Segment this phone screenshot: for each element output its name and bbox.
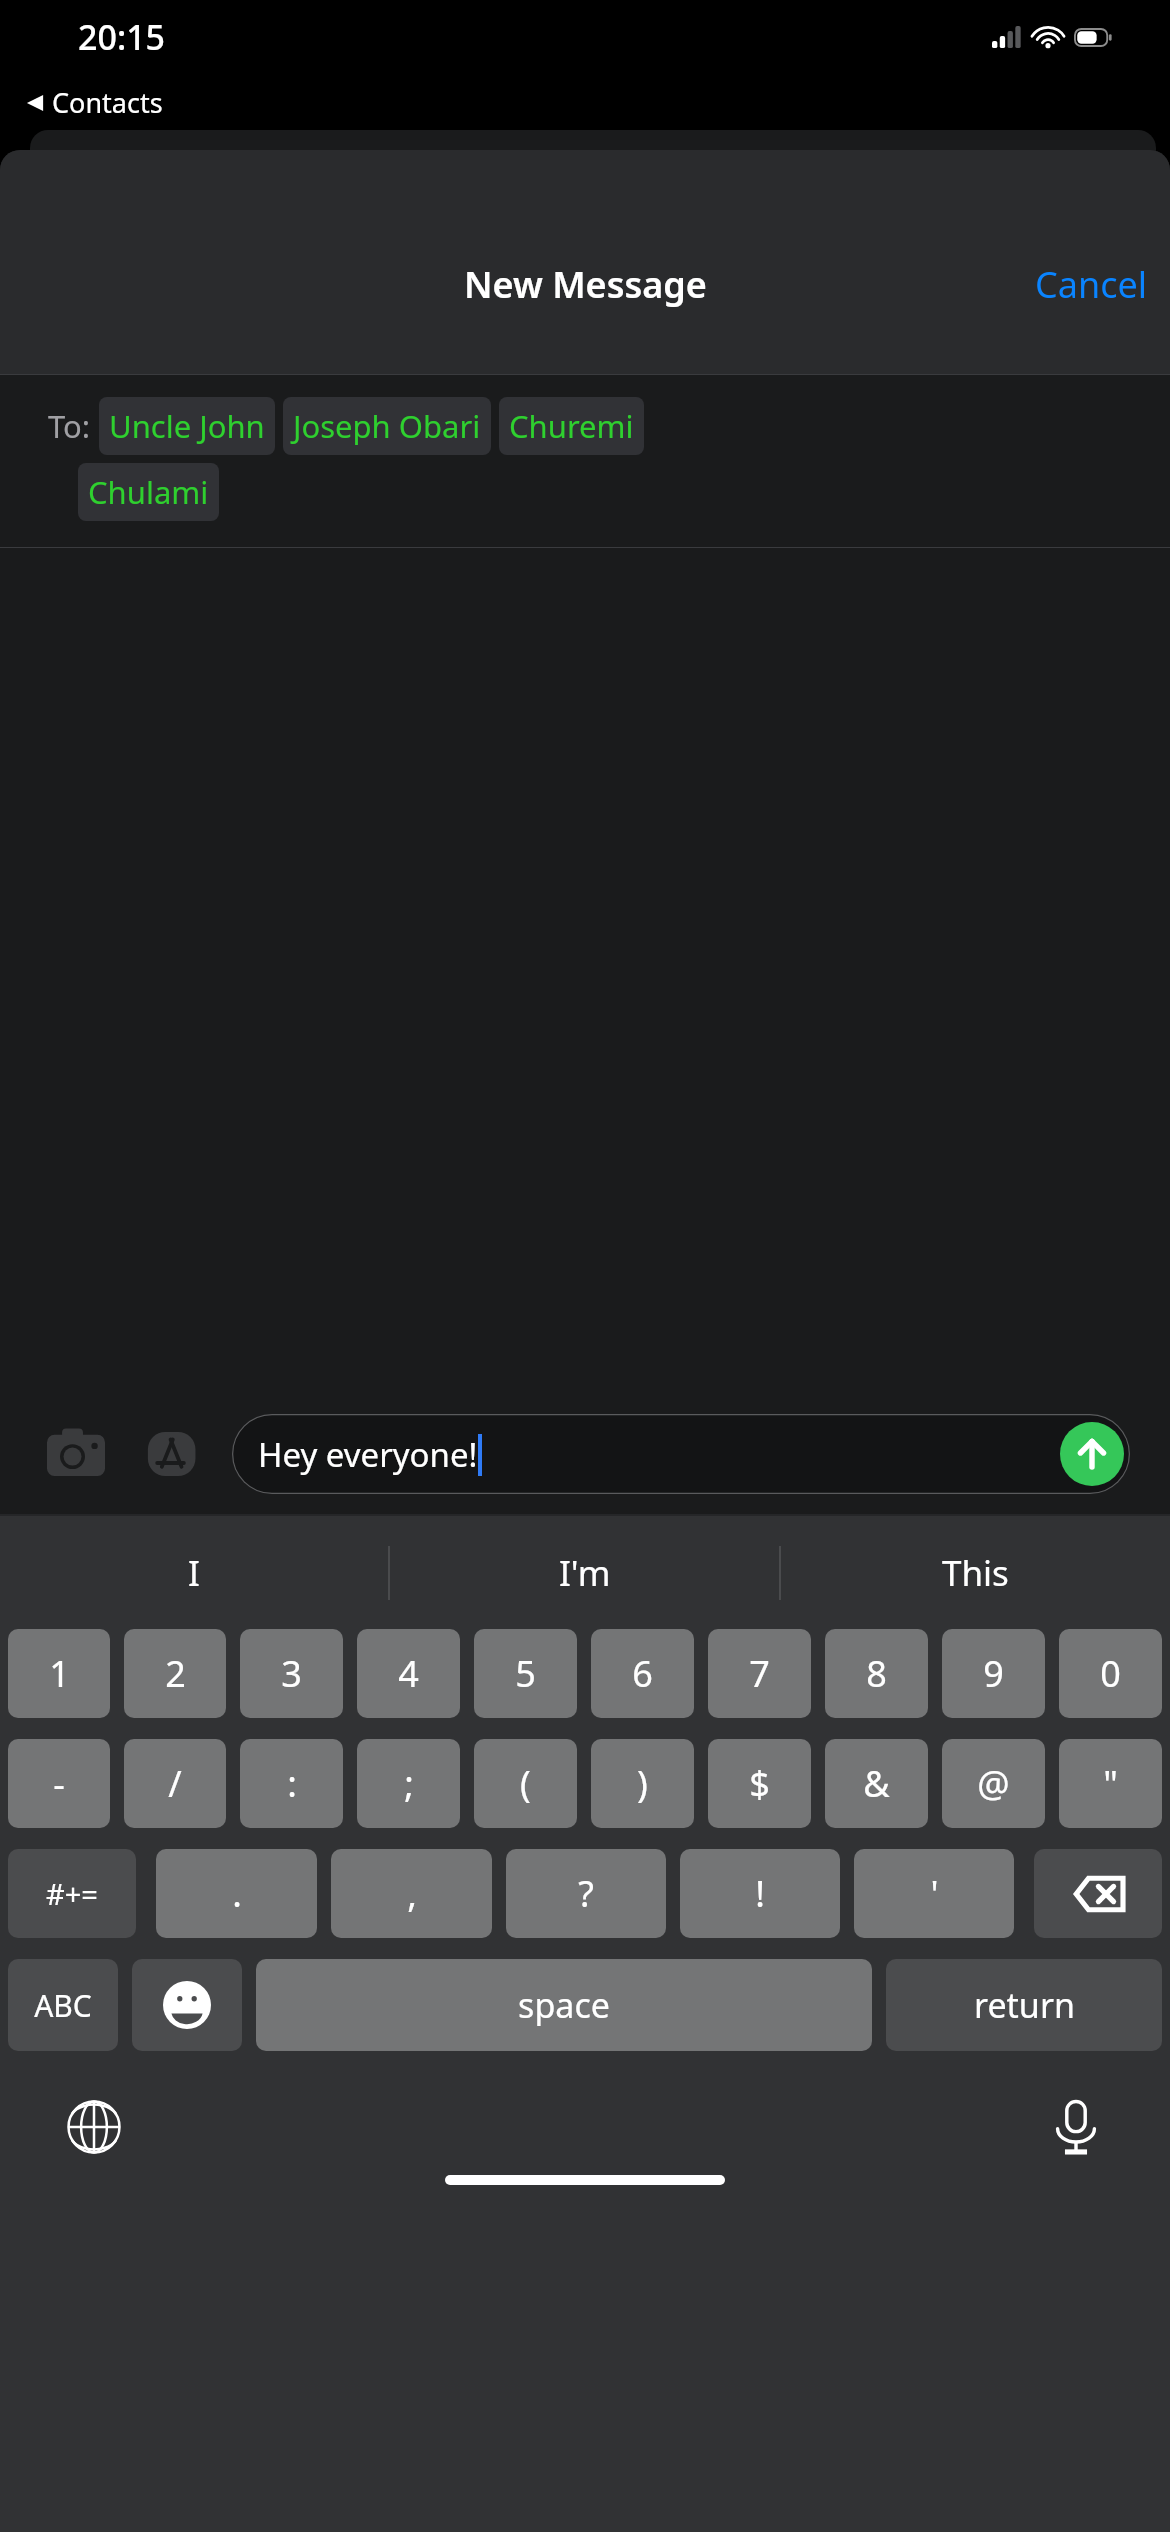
button[interactable]: return xyxy=(886,1959,1162,2051)
button[interactable]: #+= xyxy=(8,1849,136,1938)
staticText: 2 xyxy=(165,1649,186,1698)
staticText: New Message xyxy=(464,260,707,309)
staticText: / xyxy=(168,1759,182,1808)
staticText: 6 xyxy=(632,1649,653,1698)
button[interactable]: Apps xyxy=(138,1418,210,1490)
button[interactable]: Change keyboard xyxy=(56,2089,132,2165)
staticText: This xyxy=(942,1549,1009,1597)
staticText: , xyxy=(407,1869,417,1918)
staticText: $ xyxy=(749,1759,770,1808)
button[interactable]: , xyxy=(331,1849,492,1938)
button[interactable]: . xyxy=(156,1849,317,1938)
staticText: Chulami xyxy=(88,471,209,513)
button[interactable]: ( xyxy=(474,1739,577,1828)
staticText: Churemi xyxy=(509,405,634,447)
staticText: return xyxy=(974,1982,1075,2028)
button[interactable]: 2 xyxy=(124,1629,226,1718)
staticText: Uncle John xyxy=(109,405,265,447)
staticText: I'm xyxy=(559,1549,611,1597)
button[interactable]: Dictate xyxy=(1038,2089,1114,2165)
staticText: 4 xyxy=(398,1649,419,1698)
button[interactable]: Churemi xyxy=(499,397,644,455)
button[interactable]: ABC xyxy=(8,1959,118,2051)
staticText: space xyxy=(518,1982,610,2028)
button[interactable]: 6 xyxy=(591,1629,694,1718)
staticText: ABC xyxy=(34,1985,92,2026)
button[interactable]: Camera xyxy=(40,1418,112,1490)
button[interactable]: 3 xyxy=(240,1629,343,1718)
staticText: Contacts xyxy=(52,84,163,121)
button[interactable]: 9 xyxy=(942,1629,1045,1718)
staticText: 8 xyxy=(866,1649,887,1698)
button[interactable]: ? xyxy=(506,1849,666,1938)
staticText: ! xyxy=(755,1869,765,1918)
staticText: ; xyxy=(404,1759,414,1808)
staticText: #+= xyxy=(46,1874,98,1913)
staticText: Hey everyone! xyxy=(258,1432,478,1477)
button[interactable]: This xyxy=(781,1516,1170,1629)
button[interactable]: Send xyxy=(1060,1422,1124,1486)
button[interactable]: Backspace xyxy=(1034,1849,1162,1938)
button[interactable]: " xyxy=(1059,1739,1162,1828)
button[interactable]: $ xyxy=(708,1739,811,1828)
staticText: 5 xyxy=(515,1649,536,1698)
button[interactable]: ) xyxy=(591,1739,694,1828)
staticText: : xyxy=(287,1759,297,1808)
button[interactable]: Joseph Obari xyxy=(283,397,491,455)
staticText: ? xyxy=(578,1869,594,1918)
staticText: ' xyxy=(930,1869,939,1918)
button[interactable]: Uncle John xyxy=(99,397,275,455)
staticText: 9 xyxy=(983,1649,1004,1698)
button[interactable]: I'm xyxy=(390,1516,779,1629)
staticText: I xyxy=(188,1549,200,1597)
staticText: Cancel xyxy=(1035,260,1148,309)
staticText: " xyxy=(1103,1759,1118,1808)
button[interactable]: 0 xyxy=(1059,1629,1162,1718)
staticText: & xyxy=(863,1759,890,1808)
button[interactable]: 8 xyxy=(825,1629,928,1718)
button[interactable]: @ xyxy=(942,1739,1045,1828)
staticText: 7 xyxy=(749,1649,770,1698)
button[interactable]: 4 xyxy=(357,1629,460,1718)
staticText: 1 xyxy=(49,1649,70,1698)
button[interactable]: Emoji xyxy=(132,1959,242,2051)
button[interactable]: ! xyxy=(680,1849,840,1938)
staticText: 3 xyxy=(281,1649,302,1698)
staticText: - xyxy=(53,1759,65,1808)
button[interactable]: 5 xyxy=(474,1629,577,1718)
button[interactable]: space xyxy=(256,1959,872,2051)
button[interactable]: ' xyxy=(854,1849,1014,1938)
staticText: . xyxy=(232,1869,242,1918)
button[interactable]: Chulami xyxy=(78,463,219,521)
button[interactable]: 7 xyxy=(708,1629,811,1718)
button[interactable]: Cancel xyxy=(1013,250,1170,319)
staticText: ) xyxy=(637,1759,648,1808)
button[interactable]: Hey everyone! xyxy=(232,1414,1130,1494)
staticText: Joseph Obari xyxy=(293,405,481,447)
button[interactable]: ; xyxy=(357,1739,460,1828)
staticText: @ xyxy=(977,1759,1010,1808)
button[interactable]: 1 xyxy=(8,1629,110,1718)
staticText: 0 xyxy=(1100,1649,1121,1698)
button[interactable]: I xyxy=(0,1516,388,1629)
button[interactable]: Contacts xyxy=(26,84,163,121)
staticText: To: xyxy=(48,405,91,447)
button[interactable]: & xyxy=(825,1739,928,1828)
staticText: 20:15 xyxy=(78,14,166,60)
staticText: ( xyxy=(520,1759,531,1808)
button[interactable]: / xyxy=(124,1739,226,1828)
button[interactable]: - xyxy=(8,1739,110,1828)
button[interactable]: : xyxy=(240,1739,343,1828)
